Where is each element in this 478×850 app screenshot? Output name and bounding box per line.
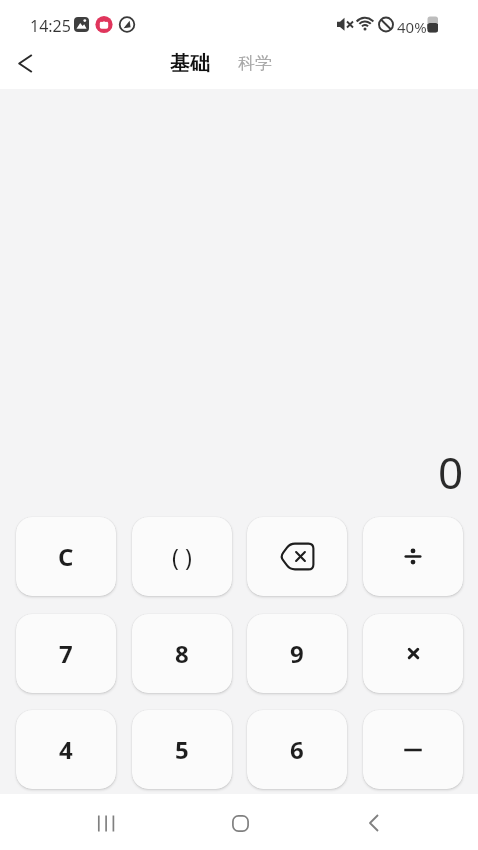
staticText: 0 [438,442,464,502]
button[interactable]: 科学 [238,53,272,74]
staticText: 14:25 [30,15,71,37]
button[interactable] [363,517,463,596]
button[interactable]: 8 [132,614,232,693]
button[interactable] [363,614,463,693]
staticText: 基础 [170,51,210,76]
button[interactable]: C [16,517,116,596]
button[interactable] [82,799,130,847]
staticText: 4 [59,733,73,766]
staticText: 科学 [238,53,272,74]
button[interactable]: 7 [16,614,116,693]
button[interactable] [216,799,264,847]
button[interactable]: 4 [16,710,116,789]
button[interactable]: 基础 [170,51,210,76]
staticText: 8 [175,637,189,670]
staticText: 6 [290,733,304,766]
button[interactable]: 6 [247,710,347,789]
staticText: 9 [290,637,304,670]
staticText: 40% [397,17,427,37]
button[interactable]: ( ) [132,517,232,596]
button[interactable]: 5 [132,710,232,789]
staticText: C [58,540,74,573]
button[interactable] [247,517,347,596]
button[interactable] [5,40,45,86]
staticText: 7 [59,637,73,670]
button[interactable] [363,710,463,789]
button[interactable]: 9 [247,614,347,693]
button[interactable] [350,799,398,847]
staticText: 5 [175,733,189,766]
staticText: ( ) [172,541,192,572]
